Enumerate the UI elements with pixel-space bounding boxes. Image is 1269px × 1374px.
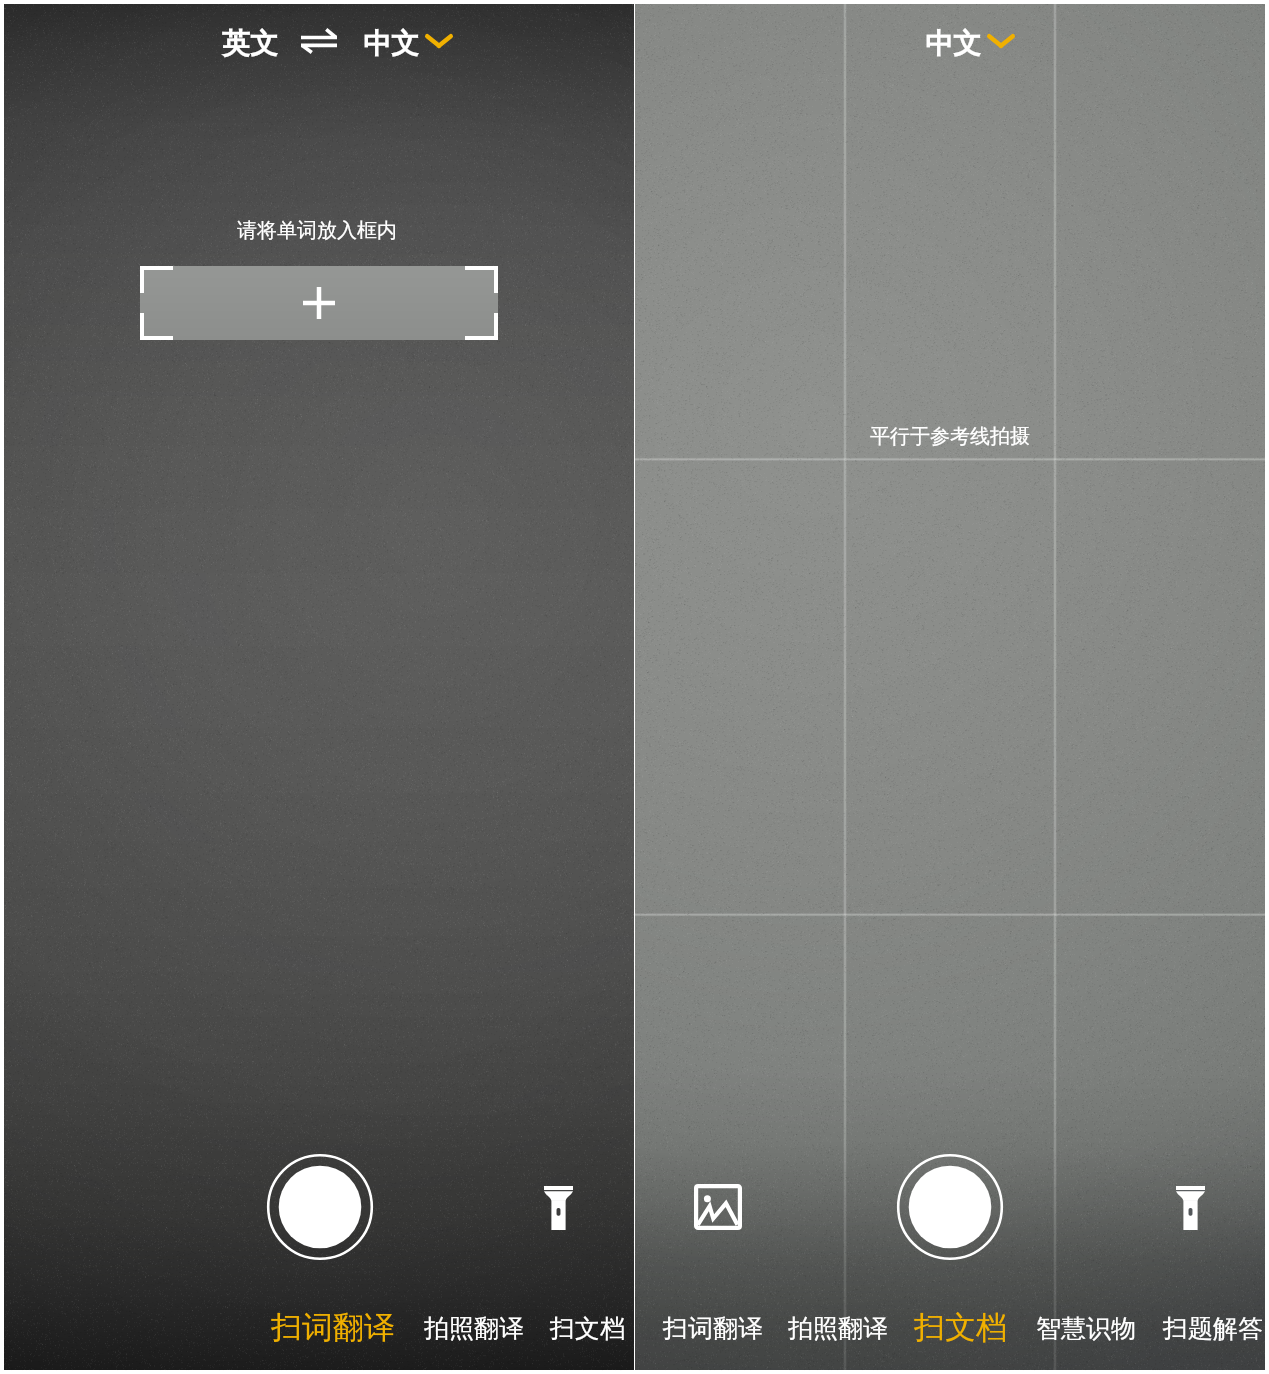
button[interactable]: 拍照翻译 [414,1303,534,1354]
button[interactable]: 扫题解答 [1153,1303,1269,1354]
staticText: 扫文档 [550,1313,625,1344]
staticText: 扫文档 [914,1308,1007,1347]
staticText: 扫题解答 [1163,1313,1263,1344]
button[interactable]: 智慧识物 [1026,1303,1146,1354]
button[interactable]: 扫文档 [904,1298,1017,1357]
staticText: 拍照翻译 [788,1313,888,1344]
staticText: 中文 [925,26,981,61]
button[interactable]: Flashlight [1162,1174,1220,1246]
button[interactable]: 英文 [210,14,290,73]
staticText: 平行于参考线拍摄 [870,424,1030,449]
button[interactable]: 拍照翻译 [778,1303,898,1354]
button[interactable]: 扫词翻译 [261,1298,405,1357]
button[interactable]: Shutter [265,1152,375,1262]
staticText: 请将单词放入框内 [237,218,397,243]
button[interactable]: 中文 [351,14,459,73]
button[interactable]: Gallery [676,1172,760,1242]
staticText: 英文 [222,26,278,61]
staticText: 中文 [363,26,419,61]
button[interactable]: 扫词翻译 [653,1303,773,1354]
button[interactable]: Scan area [140,266,498,340]
button[interactable]: Swap languages [294,20,348,62]
staticText: 智慧识物 [1036,1313,1136,1344]
staticText: 拍照翻译 [424,1313,524,1344]
button[interactable]: 扫文档 [540,1303,635,1354]
staticText: 扫词翻译 [663,1313,763,1344]
button[interactable]: Flashlight [530,1174,588,1246]
button[interactable]: 中文 [913,14,1021,73]
button[interactable]: Shutter [895,1152,1005,1262]
staticText: 扫词翻译 [271,1308,395,1347]
